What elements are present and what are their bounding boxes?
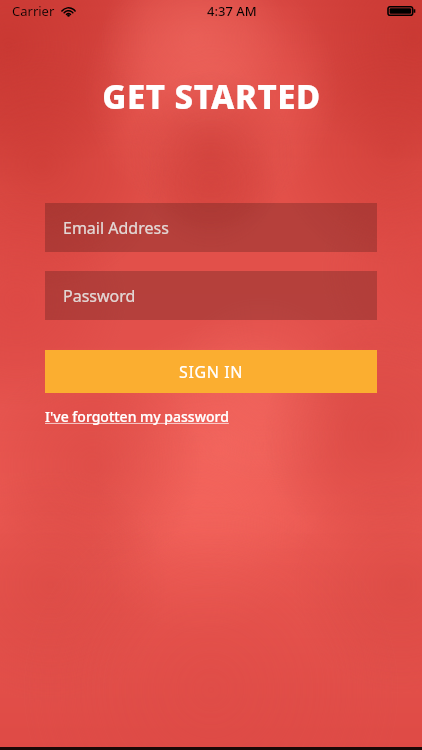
staticText: Password (63, 285, 136, 307)
staticText: SIGN IN (179, 361, 243, 383)
button[interactable]: Email Address (45, 203, 377, 252)
button[interactable]: SIGN IN (45, 350, 377, 393)
staticText: 4:37 AM (207, 2, 257, 20)
button[interactable]: Password (45, 271, 377, 320)
staticText: GET STARTED (102, 74, 321, 119)
staticText: Email Address (63, 217, 169, 239)
staticText: I've forgotten my password (45, 407, 229, 426)
staticText: Carrier (12, 2, 55, 20)
button[interactable]: I've forgotten my password (45, 405, 229, 428)
